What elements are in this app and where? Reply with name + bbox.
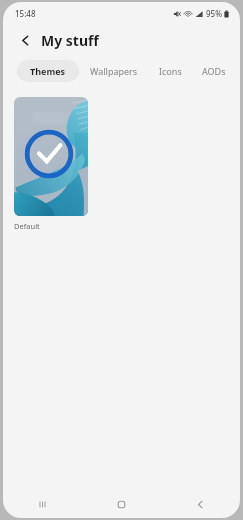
button[interactable]: Wallpapers (79, 60, 149, 82)
staticText: 15:48 (15, 8, 36, 19)
button[interactable]: Back (161, 490, 240, 518)
button[interactable]: Default theme, selected (14, 97, 88, 216)
staticText: Themes (30, 65, 66, 77)
staticText: Wallpapers (90, 65, 138, 77)
staticText: 95% (206, 8, 222, 19)
staticText: AODs (202, 65, 226, 77)
button[interactable]: AODs (192, 60, 236, 82)
staticText: My stuff (41, 31, 99, 50)
staticText: Icons (159, 65, 182, 77)
button[interactable]: Home (82, 490, 161, 518)
button[interactable]: Back (14, 29, 36, 51)
button[interactable]: Themes (17, 60, 79, 82)
button[interactable]: Icons (149, 60, 192, 82)
button[interactable]: Recents (3, 490, 82, 518)
staticText: Default (14, 221, 88, 231)
